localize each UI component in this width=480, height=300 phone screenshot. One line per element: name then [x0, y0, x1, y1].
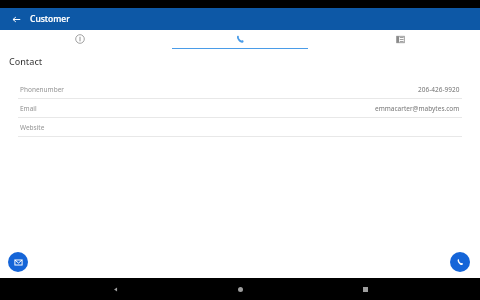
staticText: Contact: [9, 55, 43, 67]
staticText: 206-426-9920: [418, 85, 460, 94]
staticText: Email: [20, 104, 37, 113]
button[interactable]: Back: [9, 12, 23, 26]
button[interactable]: Details: [320, 30, 480, 50]
button[interactable]: Back: [105, 279, 125, 299]
button[interactable]: Phonenumber: [9, 80, 471, 98]
button[interactable]: Send email: [8, 252, 28, 272]
staticText: Customer: [30, 13, 70, 25]
button[interactable]: Email: [9, 99, 471, 117]
button[interactable]: Call: [450, 252, 470, 272]
button[interactable]: Website: [9, 118, 471, 136]
button[interactable]: Phone: [160, 30, 320, 50]
staticText: Phonenumber: [20, 85, 65, 94]
button[interactable]: Home: [230, 279, 250, 299]
staticText: Website: [20, 123, 45, 132]
button[interactable]: Recents: [355, 279, 375, 299]
button[interactable]: Info: [0, 30, 160, 50]
staticText: emmacarter@mabytes.com: [375, 104, 460, 113]
